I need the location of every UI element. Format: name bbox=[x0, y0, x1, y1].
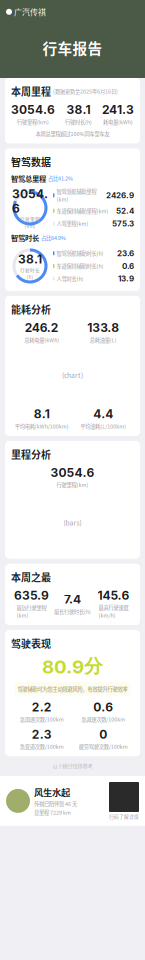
staticText: 车道保持辅助时长(h) bbox=[56, 262, 103, 270]
staticText: 3054.6 bbox=[50, 465, 94, 480]
staticText: 急减速次数/100km bbox=[81, 715, 125, 723]
staticText: 平均电耗(kWh/100km) bbox=[15, 422, 69, 430]
staticText: 传祺已陪伴您 46 天 bbox=[34, 800, 77, 808]
staticText: 急加速次数/100km bbox=[20, 715, 64, 723]
staticText: 575.3 bbox=[112, 219, 134, 228]
staticText: 0.6 bbox=[122, 261, 134, 271]
staticText: 行驶时长(h) bbox=[65, 118, 92, 126]
staticText: 7.4 bbox=[64, 592, 81, 606]
staticText: 最远行驶里程(km) bbox=[16, 604, 46, 619]
staticText: 3054.6 bbox=[12, 187, 48, 216]
staticText: 智驾领航辅助里程(km) bbox=[56, 187, 96, 203]
staticText: 智驾总里程 bbox=[11, 173, 46, 183]
staticText: 急变道次数/100km bbox=[20, 743, 64, 750]
staticText: 13.9 bbox=[118, 274, 134, 283]
staticText: 行车报告 bbox=[42, 37, 102, 58]
staticText: 133.8 bbox=[87, 320, 119, 335]
staticText: 本周之最 bbox=[11, 570, 51, 584]
staticText: 疲劳驾驶次数/100km bbox=[79, 743, 128, 750]
staticText: 本周里程 bbox=[11, 84, 51, 98]
staticText: 23.6 bbox=[117, 248, 134, 258]
staticText: 以上统计仅供参考 bbox=[52, 762, 92, 770]
staticText: 行驶里程 bbox=[20, 216, 40, 222]
staticText: 3054.6 bbox=[11, 102, 55, 117]
staticText: 占比64.9% bbox=[41, 234, 66, 241]
staticText: 扫码了解详情 bbox=[109, 813, 139, 820]
staticText: 最长行驶时长(h) bbox=[54, 607, 91, 615]
staticText: 能耗分析 bbox=[11, 302, 51, 316]
staticText: 占比41.2% bbox=[48, 174, 73, 182]
staticText: 2.3 bbox=[32, 727, 52, 742]
staticText: 38.1 bbox=[66, 102, 90, 117]
staticText: 52.4 bbox=[116, 206, 134, 216]
staticText: 635.9 bbox=[14, 588, 49, 603]
staticText: 行驶时长 bbox=[20, 266, 40, 273]
staticText: (km) bbox=[24, 222, 35, 229]
staticText: 行驶里程(km) bbox=[17, 118, 49, 126]
staticText: 80.9分 bbox=[42, 655, 103, 678]
staticText: 智驾领航辅助时长(h) bbox=[56, 249, 103, 257]
staticText: 246.2 bbox=[25, 320, 59, 335]
staticText: (数据更新至2025年6月16日) bbox=[53, 87, 118, 95]
staticText: 241.3 bbox=[102, 102, 134, 117]
staticText: (bars) bbox=[63, 518, 81, 527]
staticText: 总里程 7229 km bbox=[34, 809, 71, 816]
staticText: 0.6 bbox=[93, 700, 113, 714]
staticText: 2.2 bbox=[32, 700, 52, 714]
staticText: 总耗油量(L) bbox=[90, 336, 117, 344]
staticText: 行驶里程(km) bbox=[56, 481, 88, 489]
staticText: 38.1 bbox=[18, 252, 42, 266]
staticText: 智驾时长 bbox=[11, 232, 39, 243]
staticText: 车道保持辅助里程(km) bbox=[56, 207, 108, 215]
staticText: 最高行驶速度(km/h) bbox=[98, 604, 128, 619]
staticText: 风生水起 bbox=[34, 785, 70, 799]
staticText: 广汽传祺 bbox=[14, 6, 46, 18]
staticText: 驾驶辅助可为您主动规避风险，有效提升行驶效率 bbox=[17, 685, 127, 693]
staticText: 本周总里程超过100%同车型车友 bbox=[35, 130, 109, 137]
staticText: 平均油耗(L/100km) bbox=[80, 422, 126, 430]
staticText: 耗电量(kWh) bbox=[103, 118, 133, 126]
staticText: 4.4 bbox=[93, 407, 113, 421]
staticText: 145.6 bbox=[97, 588, 129, 603]
staticText: (chart) bbox=[62, 370, 83, 380]
staticText: (h) bbox=[26, 273, 33, 280]
staticText: 2426.9 bbox=[106, 190, 134, 200]
staticText: 总耗电量(kWh) bbox=[24, 336, 59, 344]
staticText: 人驾时长(h) bbox=[56, 275, 83, 282]
staticText: 智驾数据 bbox=[11, 154, 51, 169]
staticText: 人驾里程(km) bbox=[56, 220, 88, 227]
staticText: 0 bbox=[99, 727, 107, 742]
staticText: 驾驶表现 bbox=[11, 636, 51, 651]
staticText: 8.1 bbox=[34, 407, 50, 421]
staticText: 里程分析 bbox=[11, 447, 51, 461]
